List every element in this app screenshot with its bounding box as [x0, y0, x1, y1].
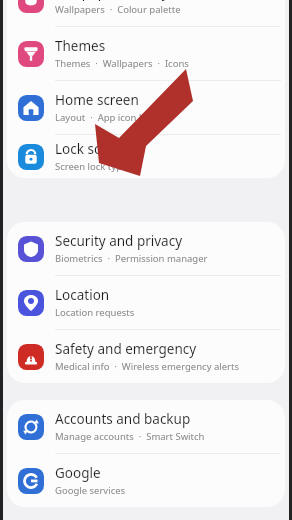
- staticText: Medical info · Wireless emergency alerts: [55, 360, 240, 373]
- button[interactable]: Location: [7, 276, 285, 330]
- button[interactable]: Safety and emergency: [7, 330, 285, 383]
- staticText: Google services: [55, 484, 126, 497]
- button[interactable]: Themes: [7, 27, 285, 81]
- staticText: Wallpapers · Colour palette: [55, 3, 181, 16]
- other: Annotation arrow pointing to Lock screen: [0, 0, 292, 520]
- button[interactable]: Google: [7, 454, 285, 507]
- staticText: Safety and emergency: [55, 340, 197, 358]
- staticText: Layout · App icon badges: [55, 111, 172, 124]
- staticText: Google: [55, 464, 101, 482]
- button[interactable]: Accounts and backup: [7, 400, 285, 454]
- staticText: Biometrics · Permission manager: [55, 252, 208, 265]
- button[interactable]: Lock screen: [7, 135, 285, 178]
- staticText: Security and privacy: [55, 232, 183, 250]
- staticText: Lock screen: [55, 140, 130, 158]
- staticText: Location requests: [55, 306, 135, 319]
- button[interactable]: Security and privacy: [7, 222, 285, 276]
- staticText: Manage accounts · Smart Switch: [55, 430, 205, 443]
- staticText: Home screen: [55, 91, 139, 109]
- staticText: Themes: [55, 37, 106, 55]
- staticText: Accounts and backup: [55, 410, 191, 428]
- staticText: Wallpaper and style: [55, 0, 180, 1]
- staticText: Themes · Wallpapers · Icons: [55, 57, 189, 70]
- staticText: Screen lock type: [55, 160, 128, 173]
- button[interactable]: Wallpaper and style: [7, 0, 285, 27]
- button[interactable]: Home screen: [7, 81, 285, 135]
- staticText: Location: [55, 286, 110, 304]
